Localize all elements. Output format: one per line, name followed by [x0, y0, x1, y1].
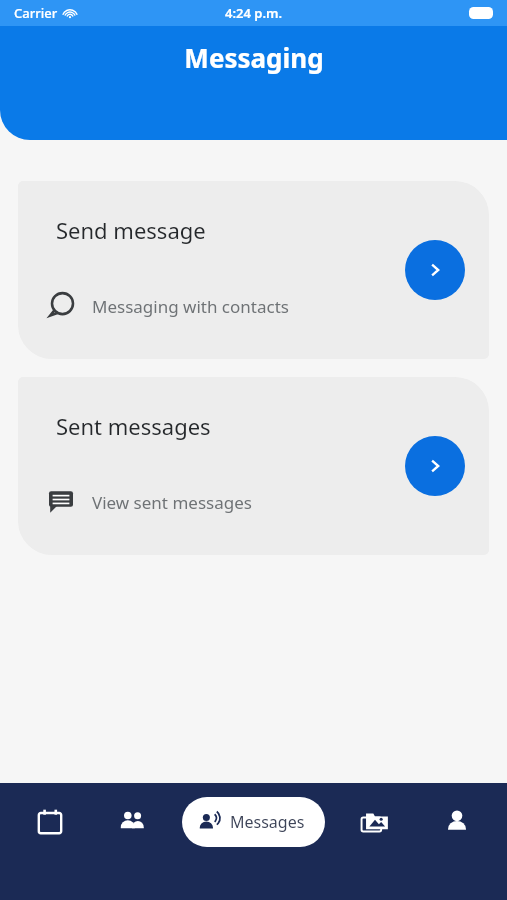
button[interactable]: Contacts [100, 797, 164, 847]
button[interactable]: Sent messages [18, 377, 489, 555]
button[interactable]: Photos [343, 797, 407, 847]
staticText: 4:24 p.m. [225, 4, 283, 22]
button[interactable]: Calendar [18, 797, 82, 847]
staticText: Sent messages [56, 411, 211, 441]
button[interactable]: Send message [405, 240, 465, 300]
button[interactable]: Send message [18, 181, 489, 359]
staticText: Messaging with contacts [92, 295, 289, 318]
button[interactable]: Sent messages [405, 436, 465, 496]
staticText: Messaging [184, 40, 324, 75]
staticText: Carrier [14, 4, 58, 22]
staticText: Messages [230, 811, 305, 833]
staticText: View sent messages [92, 491, 252, 514]
button[interactable]: Messages [182, 797, 325, 847]
button[interactable]: Profile [425, 797, 489, 847]
staticText: Send message [56, 215, 206, 245]
